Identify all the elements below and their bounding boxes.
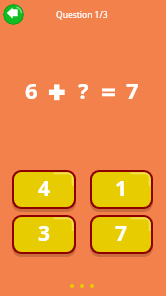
button[interactable]: 7 bbox=[90, 215, 153, 254]
button[interactable]: 1 bbox=[90, 170, 153, 209]
staticText: 6 bbox=[25, 75, 38, 105]
staticText: Question 1/3 bbox=[56, 9, 108, 21]
button[interactable]: 3 bbox=[12, 215, 76, 254]
staticText: 3 bbox=[38, 219, 51, 248]
staticText: 7 bbox=[126, 75, 139, 105]
staticText: ? bbox=[78, 75, 89, 105]
button[interactable]: 4 bbox=[12, 170, 76, 209]
staticText: 7 bbox=[115, 219, 128, 248]
staticText: 1 bbox=[115, 174, 128, 203]
button[interactable]: Back bbox=[3, 4, 24, 25]
staticText: 4 bbox=[38, 174, 51, 203]
